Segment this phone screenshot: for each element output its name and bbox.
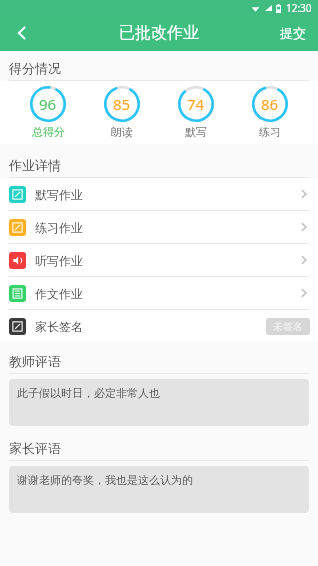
staticText: 默写作业 <box>35 187 83 202</box>
staticText: 作文作业 <box>35 286 83 301</box>
staticText: 已批改作业 <box>119 23 199 43</box>
staticText: 练习作业 <box>35 220 83 235</box>
staticText: 教师评语 <box>9 353 61 369</box>
button[interactable]: 85 <box>90 86 154 139</box>
staticText: 74 <box>187 94 205 114</box>
staticText: 家长签名 <box>35 319 83 334</box>
staticText: 96 <box>39 94 57 114</box>
staticText: 得分情况 <box>9 60 61 76</box>
button[interactable]: 听写作业 <box>0 244 318 276</box>
button[interactable]: 96 <box>16 86 80 139</box>
staticText: 此子假以时日，必定非常人也 <box>17 386 160 400</box>
staticText: 提交 <box>280 25 306 41</box>
button[interactable]: 提交 <box>268 15 318 51</box>
staticText: 12:30 <box>286 1 312 15</box>
button[interactable]: 家长签名 <box>0 310 318 342</box>
staticText: 作业详情 <box>9 157 61 173</box>
button[interactable]: 谢谢老师的夸奖，我也是这么认为的 <box>9 466 309 513</box>
button[interactable]: Back <box>0 15 44 51</box>
staticText: 总得分 <box>32 125 65 139</box>
staticText: 谢谢老师的夸奖，我也是这么认为的 <box>17 473 193 487</box>
button[interactable]: 此子假以时日，必定非常人也 <box>9 379 309 426</box>
staticText: 86 <box>261 94 279 114</box>
button[interactable]: 默写作业 <box>0 178 318 210</box>
button[interactable]: 86 <box>238 86 302 139</box>
staticText: 85 <box>113 94 131 114</box>
button[interactable]: 练习作业 <box>0 211 318 243</box>
button[interactable]: 74 <box>164 86 228 139</box>
staticText: 听写作业 <box>35 253 83 268</box>
staticText: 默写 <box>185 125 207 139</box>
button[interactable]: 作文作业 <box>0 277 318 309</box>
staticText: 家长评语 <box>9 440 61 456</box>
staticText: 朗读 <box>111 125 133 139</box>
staticText: 未签名 <box>273 320 303 333</box>
staticText: 练习 <box>259 125 281 139</box>
